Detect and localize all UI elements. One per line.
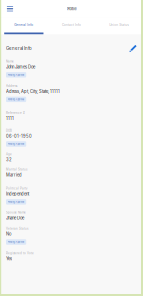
staticText: Pending Approval [8, 200, 25, 203]
staticText: Spouse Name [6, 211, 26, 214]
staticText: Marital Status [6, 168, 27, 171]
staticText: Profile [66, 6, 76, 11]
staticText: Name [6, 60, 14, 63]
staticText: Political Party [6, 187, 28, 190]
staticText: John James Doe [6, 64, 35, 69]
staticText: Pending Approval [8, 143, 25, 145]
button[interactable]: Contact Info [48, 17, 95, 34]
staticText: 06-01-1950 [6, 134, 32, 139]
staticText: Pending Approval [8, 241, 25, 243]
staticText: Jhane Doe [6, 215, 24, 220]
staticText: Reference # [6, 111, 25, 115]
staticText: Veteran Status [6, 227, 28, 230]
staticText: Registered to Vote [6, 251, 34, 255]
staticText: Age [6, 153, 12, 156]
staticText: 32 [6, 157, 12, 162]
staticText: 1111 [6, 116, 14, 121]
staticText: Married [6, 172, 22, 177]
staticText: Union Status [109, 23, 129, 27]
staticText: General Info [14, 23, 33, 27]
staticText: Pending Approval [8, 73, 25, 76]
staticText: Address [6, 84, 17, 88]
staticText: Adress, Apt, City, State, 11111 [6, 89, 60, 94]
staticText: Independent [6, 191, 29, 196]
staticText: Yes [6, 256, 12, 261]
staticText: No [6, 232, 11, 237]
button[interactable]: General Info [0, 17, 48, 34]
button[interactable]: Union Status [95, 17, 143, 34]
staticText: DOB [6, 129, 12, 132]
button[interactable]: Edit [129, 44, 137, 52]
staticText: General Info [6, 46, 32, 51]
staticText: Contact Info [62, 23, 81, 27]
staticText: Pending Approval [8, 98, 25, 101]
button[interactable]: Menu [3, 0, 17, 17]
